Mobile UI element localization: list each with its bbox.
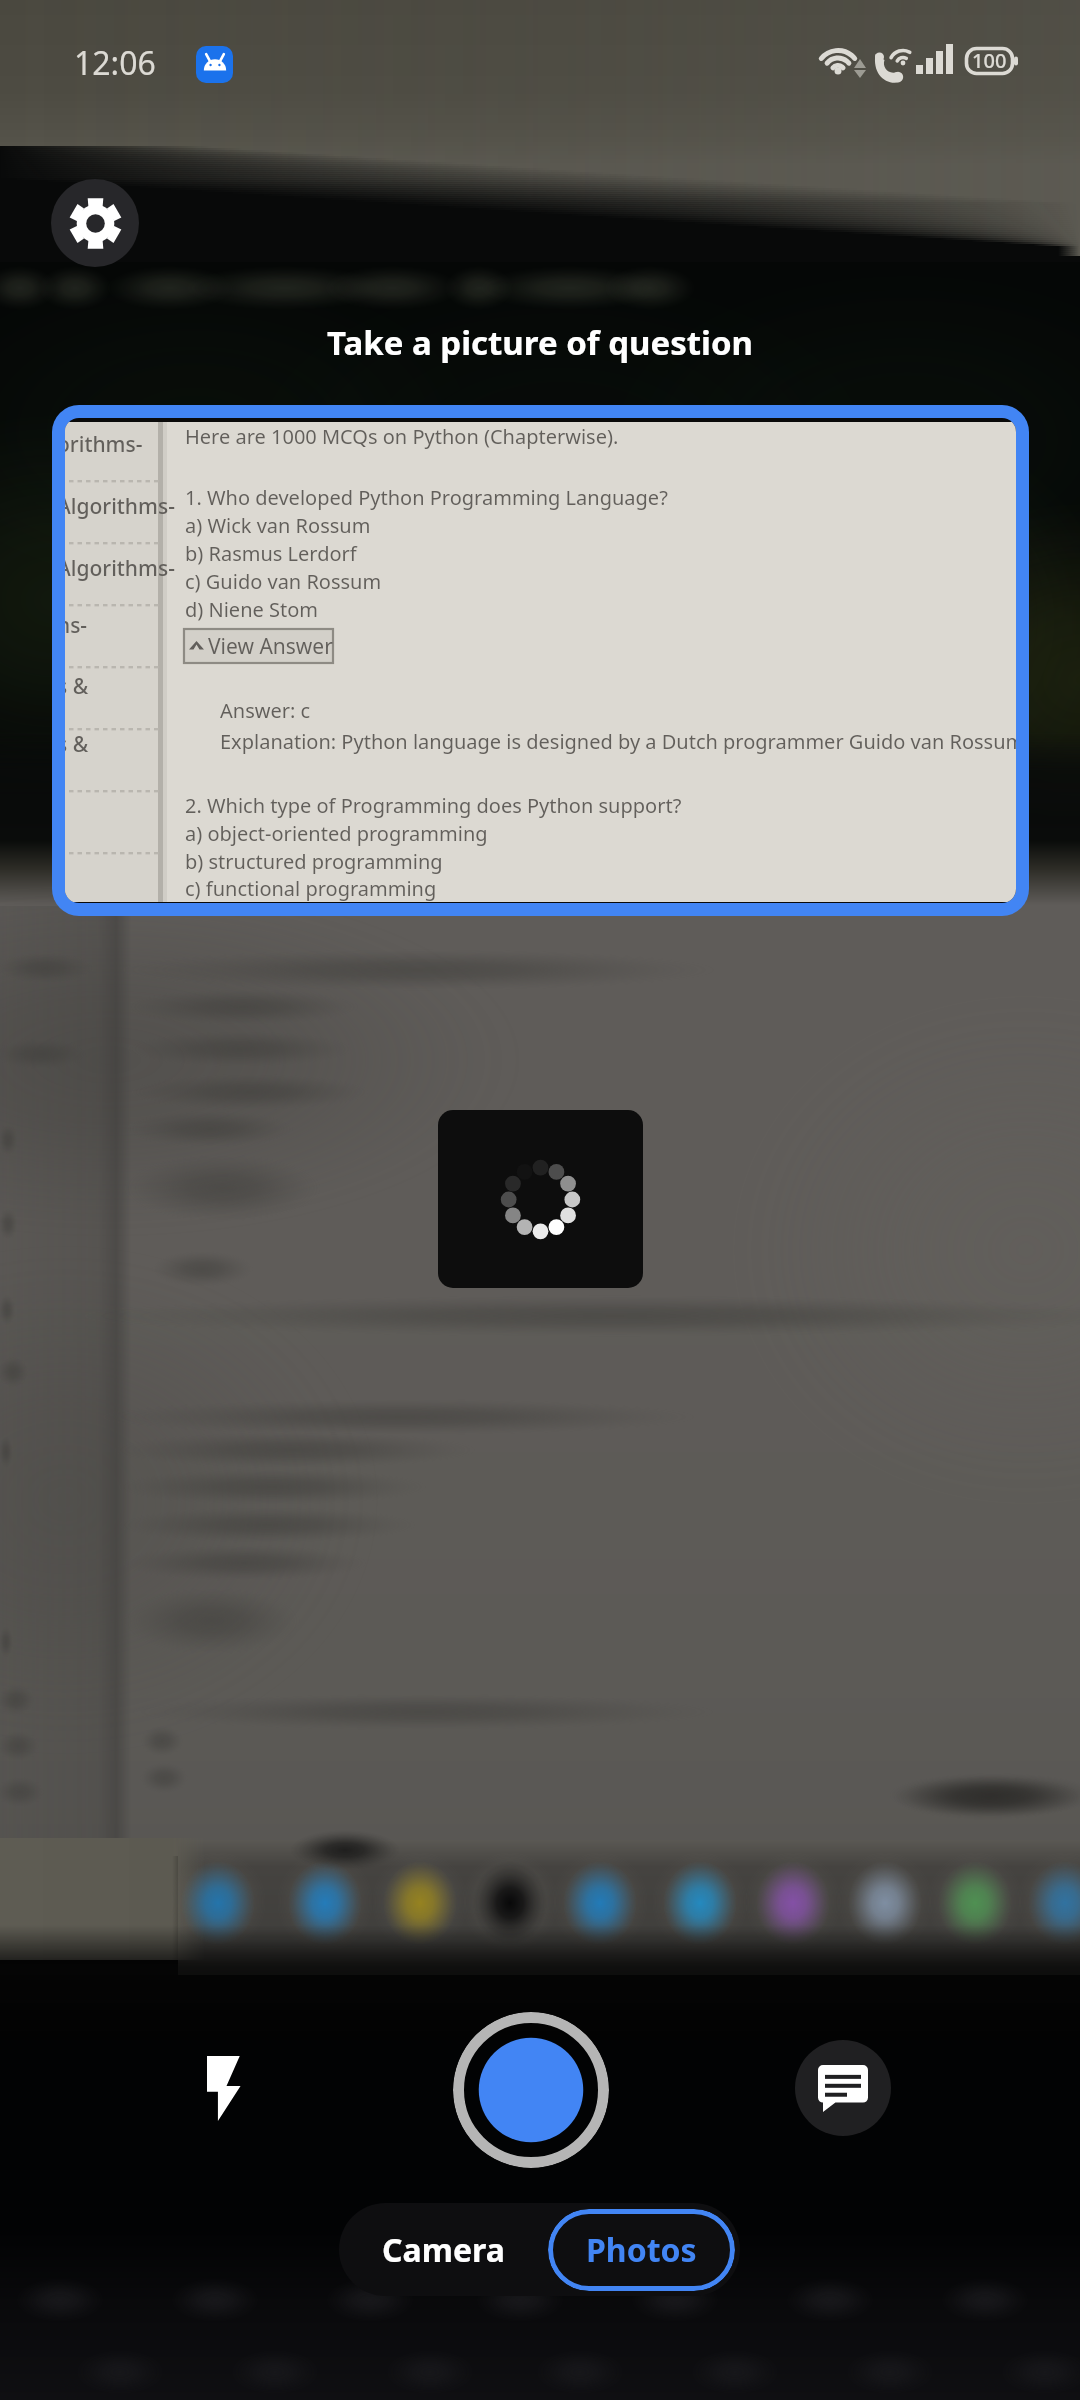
staticText: Explanation: Python language is designed… — [220, 728, 1016, 755]
staticText: s & — [65, 730, 89, 759]
staticText: c) functional programming — [185, 875, 437, 902]
staticText: 2. Which type of Programming does Python… — [185, 792, 682, 819]
button[interactable]: Camera — [339, 2203, 548, 2296]
button[interactable]: Photos — [548, 2209, 735, 2291]
staticText: b) Rasmus Lerdorf — [185, 540, 357, 567]
staticText: Algorithms- — [65, 492, 175, 521]
button[interactable]: orithms- — [65, 422, 1016, 902]
staticText: 1. Who developed Python Programming Lang… — [185, 484, 668, 511]
staticText: a) object-oriented programming — [185, 820, 488, 847]
button[interactable]: Messages — [795, 2040, 891, 2136]
staticText: Here are 1000 MCQs on Python (Chapterwis… — [185, 423, 619, 450]
staticText: Answer: c — [220, 697, 311, 724]
staticText: s & — [65, 672, 89, 701]
staticText: a) Wick van Rossum — [185, 512, 371, 539]
button[interactable]: Settings — [51, 179, 139, 267]
staticText: 12:06 — [74, 41, 156, 85]
staticText: orithms- — [65, 430, 143, 459]
button[interactable]: Flash — [178, 2040, 274, 2136]
staticText: Photos — [586, 2228, 697, 2272]
staticText: b) structured programming — [185, 848, 443, 875]
staticText: Take a picture of question — [0, 320, 1080, 365]
staticText: View Answer — [208, 632, 333, 661]
staticText: ns- — [65, 611, 88, 640]
staticText: c) Guido van Rossum — [185, 568, 382, 595]
button[interactable]: Take picture — [453, 2012, 609, 2168]
staticText: Camera — [382, 2228, 505, 2272]
staticText: d) Niene Stom — [185, 596, 318, 623]
staticText: Algorithms- — [65, 554, 175, 583]
staticText: 100 — [972, 47, 1007, 74]
